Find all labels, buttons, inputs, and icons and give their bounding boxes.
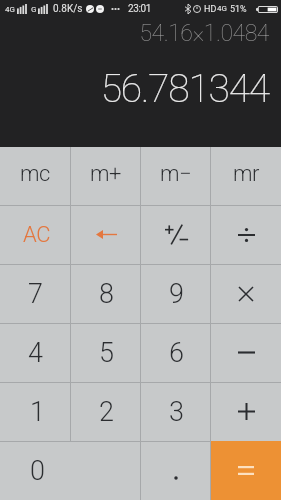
button[interactable]: Decimal point: [141, 441, 211, 500]
staticText: mr: [233, 161, 260, 187]
button[interactable]: 2: [71, 382, 141, 441]
staticText: 9: [169, 278, 184, 310]
staticText: 1: [30, 396, 45, 428]
staticText: 3: [169, 396, 184, 428]
button[interactable]: 5: [71, 323, 141, 382]
button[interactable]: 6: [141, 323, 211, 382]
button[interactable]: AC: [0, 205, 71, 264]
staticText: 56.781344: [100, 66, 269, 112]
staticText: 54.16×1.0484: [139, 20, 269, 47]
staticText: HD: [204, 4, 217, 15]
button[interactable]: Plus minus: [141, 205, 211, 264]
staticText: 4: [28, 337, 43, 369]
staticText: 0.8K/s: [53, 3, 83, 15]
staticText: 4G: [217, 4, 227, 13]
button[interactable]: 4: [0, 323, 71, 382]
button[interactable]: Equals: [211, 441, 281, 500]
button[interactable]: mc: [0, 147, 71, 205]
staticText: •••: [111, 4, 121, 15]
button[interactable]: Divide: [211, 205, 281, 264]
staticText: AC: [23, 222, 51, 248]
staticText: m−: [160, 161, 192, 187]
staticText: 8: [99, 278, 114, 310]
button[interactable]: Backspace: [71, 205, 141, 264]
staticText: 2: [99, 396, 114, 428]
staticText: 51%: [230, 4, 247, 15]
button[interactable]: m−: [141, 147, 211, 205]
staticText: 7: [28, 278, 43, 310]
staticText: G: [31, 5, 37, 14]
button[interactable]: 9: [141, 264, 211, 323]
staticText: 4G: [5, 5, 15, 14]
staticText: 5: [99, 337, 114, 369]
staticText: 0: [30, 455, 45, 487]
staticText: 6: [169, 337, 184, 369]
staticText: mc: [20, 161, 51, 187]
button[interactable]: 1: [0, 382, 71, 441]
button[interactable]: 7: [0, 264, 71, 323]
button[interactable]: 8: [71, 264, 141, 323]
button[interactable]: Plus: [211, 382, 281, 441]
button[interactable]: 0: [0, 441, 141, 500]
staticText: 23:01: [128, 3, 151, 15]
button[interactable]: Multiply: [211, 264, 281, 323]
button[interactable]: m+: [71, 147, 141, 205]
button[interactable]: mr: [211, 147, 281, 205]
button[interactable]: 3: [141, 382, 211, 441]
button[interactable]: Minus: [211, 323, 281, 382]
staticText: m+: [90, 161, 122, 187]
